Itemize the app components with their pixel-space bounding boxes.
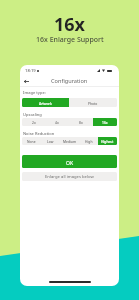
staticText: Highest	[101, 139, 114, 143]
button[interactable]: 4x	[45, 118, 69, 126]
button[interactable]: OK	[22, 155, 117, 168]
staticText: High	[85, 139, 93, 143]
staticText: Image type:	[23, 90, 46, 95]
staticText: Configuration	[51, 77, 88, 85]
button[interactable]: Enlarge all images below	[22, 172, 117, 181]
staticText: Low	[47, 139, 54, 143]
button[interactable]: 16x	[93, 118, 117, 126]
button[interactable]: High	[79, 137, 98, 145]
staticText: Noise Reduction	[23, 131, 55, 136]
staticText: 16x Enlarge Support	[36, 35, 104, 45]
button[interactable]: 2x	[22, 118, 45, 126]
button[interactable]: Medium	[60, 137, 79, 145]
staticText: OK	[66, 160, 74, 167]
button[interactable]: Photo	[69, 98, 117, 107]
button[interactable]: Highest	[98, 137, 117, 145]
staticText: 16x	[54, 12, 85, 37]
staticText: Enlarge all images below	[45, 174, 94, 180]
staticText: 4x	[55, 120, 59, 124]
staticText: Upscaling	[23, 112, 42, 117]
staticText: None	[27, 139, 36, 143]
button[interactable]: Low	[41, 137, 60, 145]
staticText: 16x	[102, 120, 108, 124]
staticText: Medium	[63, 139, 77, 143]
staticText: 2x	[32, 120, 36, 124]
staticText: 8x	[79, 120, 83, 124]
staticText: Photo	[88, 101, 98, 105]
button[interactable]: 8x	[69, 118, 93, 126]
button[interactable]: Artwork	[22, 98, 69, 107]
button[interactable]: None	[22, 137, 41, 145]
staticText: 18:19	[25, 68, 36, 74]
staticText: Artwork	[39, 101, 52, 105]
button[interactable]: Back	[22, 77, 30, 85]
